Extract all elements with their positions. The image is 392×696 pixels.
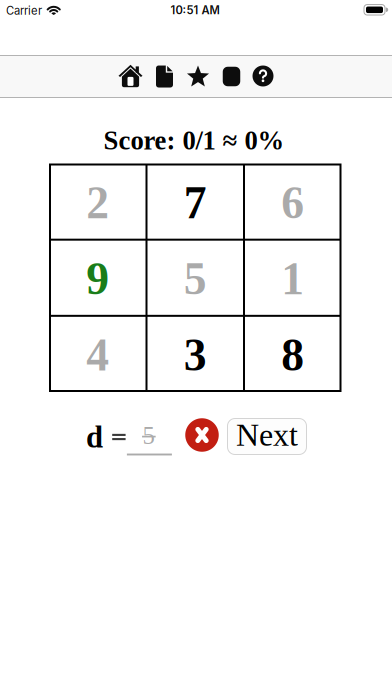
staticText: Score: 0/1 ≈ 0% (103, 126, 284, 155)
staticText: Next (236, 417, 298, 453)
button[interactable]: Favorites (186, 65, 210, 88)
staticText: 9 (86, 253, 109, 304)
staticText: 2 (86, 178, 109, 228)
staticText: 5 (142, 422, 154, 449)
staticText: 4 (86, 330, 109, 380)
staticText: 7 (184, 178, 207, 228)
staticText: 10:51 AM (170, 3, 219, 17)
staticText: 6 (281, 178, 304, 228)
button[interactable]: Stop (223, 67, 240, 86)
staticText: d (86, 420, 103, 454)
staticText: 5 (184, 253, 207, 304)
staticText: Carrier (6, 4, 42, 17)
staticText: 8 (281, 330, 304, 380)
button[interactable]: New Page (156, 65, 173, 87)
button[interactable]: Home (118, 64, 142, 88)
staticText: 1 (281, 253, 304, 304)
button[interactable]: Wrong answer (185, 418, 219, 452)
button[interactable]: Help (252, 65, 273, 86)
staticText: 3 (184, 330, 207, 380)
button[interactable]: Next (227, 418, 306, 454)
